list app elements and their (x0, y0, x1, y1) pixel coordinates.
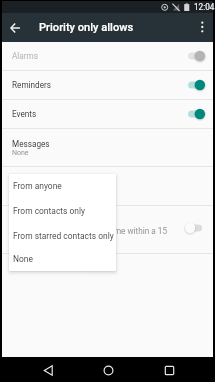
staticText: Messages (12, 139, 50, 149)
staticText: Events (12, 109, 37, 119)
button[interactable]: Reminders (2, 71, 213, 99)
button[interactable]: Toggle (185, 78, 206, 92)
button[interactable]: Toggle (185, 49, 206, 63)
button[interactable]: Navigate up (4, 17, 26, 39)
button[interactable]: Recent apps (157, 358, 181, 382)
button[interactable]: From contacts only (9, 198, 116, 223)
button[interactable]: Toggle (185, 107, 206, 121)
button[interactable]: None (9, 248, 116, 270)
button[interactable]: Alarms (2, 42, 213, 70)
button[interactable]: Calls (2, 167, 213, 205)
button[interactable]: Messages (2, 129, 213, 166)
button[interactable]: More options (191, 13, 213, 42)
staticText: None (12, 149, 29, 157)
button[interactable]: From starred contacts only (9, 223, 116, 248)
staticText: If someone calls a second time within a … (12, 226, 178, 246)
staticText: From starred contacts only (13, 231, 114, 241)
button[interactable]: From anyone (9, 174, 116, 198)
staticText: Alarms (12, 51, 38, 61)
button[interactable]: Back (36, 358, 60, 382)
button[interactable]: Home (96, 358, 120, 382)
staticText: None (13, 254, 33, 264)
staticText: From contacts only (13, 206, 86, 216)
button[interactable]: Events (2, 100, 213, 128)
staticText: From anyone (13, 181, 62, 191)
staticText: None (12, 187, 29, 195)
staticText: Priority only allows (39, 21, 134, 34)
button[interactable]: Toggle (185, 221, 206, 235)
button[interactable]: Repeat callers (2, 206, 213, 253)
staticText: Reminders (12, 80, 52, 90)
staticText: Calls (12, 177, 30, 187)
staticText: 12:04 (194, 2, 215, 12)
